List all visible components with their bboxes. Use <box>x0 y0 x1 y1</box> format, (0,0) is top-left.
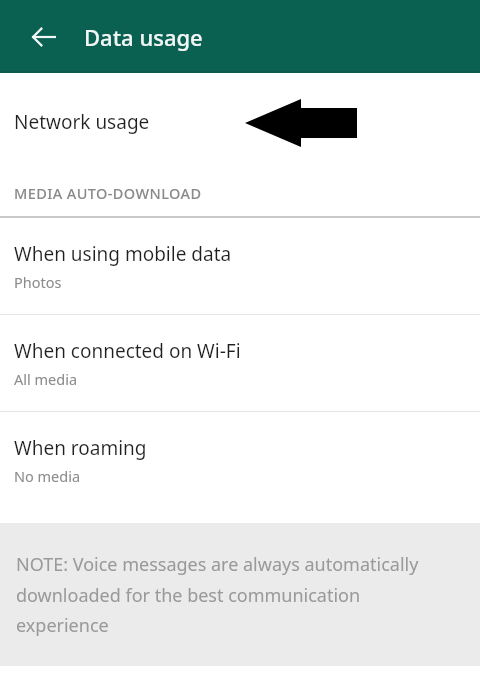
staticText: When roaming <box>14 435 147 461</box>
button[interactable]: When roaming <box>0 412 480 508</box>
staticText: MEDIA AUTO-DOWNLOAD <box>14 183 202 203</box>
button[interactable]: Network usage <box>0 73 480 170</box>
staticText: When using mobile data <box>14 241 232 267</box>
staticText: Network usage <box>14 109 150 135</box>
button[interactable]: When using mobile data <box>0 218 480 314</box>
staticText: No media <box>14 466 81 486</box>
staticText: NOTE: Voice messages are always automati… <box>16 552 450 637</box>
staticText: When connected on Wi-Fi <box>14 338 241 364</box>
staticText: All media <box>14 369 78 389</box>
staticText: Data usage <box>84 22 203 52</box>
button[interactable]: When connected on Wi-Fi <box>0 315 480 411</box>
staticText: Photos <box>14 272 62 292</box>
button[interactable]: Navigate up <box>20 13 68 61</box>
